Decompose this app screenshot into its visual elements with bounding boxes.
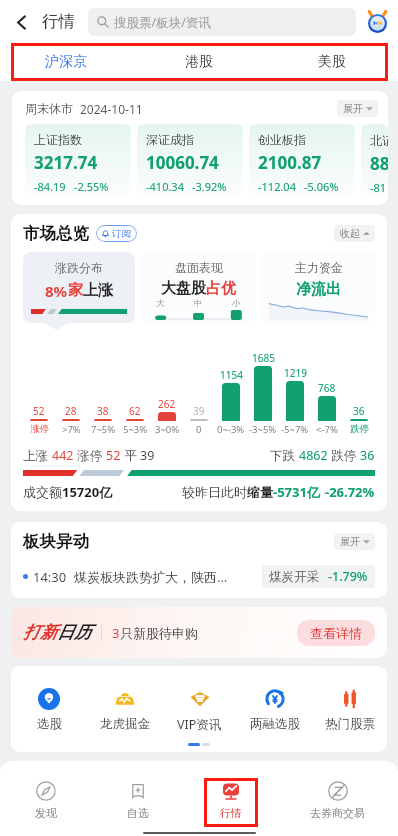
staticText: 0	[196, 423, 202, 436]
staticText: 北证50	[370, 132, 388, 148]
button[interactable]: 收起	[334, 225, 375, 242]
staticText: 3217.74	[34, 151, 98, 174]
staticText: 较昨日此时	[182, 484, 247, 500]
button[interactable]: 行情	[185, 781, 277, 820]
staticText: 煤炭板块跌势扩大，陕西…	[74, 568, 228, 586]
staticText: 热门股票	[325, 716, 375, 732]
button[interactable]: 北证50	[361, 124, 388, 194]
staticText: 62	[129, 404, 141, 418]
staticText: 两融选股	[250, 716, 300, 732]
staticText: 4862	[299, 447, 328, 464]
button[interactable]: 两融选股	[237, 688, 312, 732]
staticText: 展开	[340, 535, 360, 548]
staticText: 平 39	[121, 447, 155, 464]
button[interactable]: 上证指数	[25, 124, 131, 194]
button[interactable]: 选股	[11, 688, 87, 732]
staticText: 去券商交易	[310, 806, 365, 820]
staticText: 搜股票/板块/资讯	[114, 14, 211, 31]
staticText: 28	[65, 404, 77, 418]
staticText: -2.55%	[74, 179, 109, 194]
staticText: 上涨	[83, 281, 113, 300]
button[interactable]: 美股	[265, 43, 398, 81]
staticText: 下跌	[270, 447, 299, 464]
staticText: -1.79%	[328, 568, 368, 585]
button[interactable]: Back	[4, 5, 38, 39]
staticText: 行情	[220, 806, 242, 820]
staticText: VIP资讯	[177, 716, 222, 733]
staticText: <-7%	[316, 423, 338, 436]
staticText: 占优	[206, 279, 236, 298]
button[interactable]: 沪深京	[0, 43, 132, 81]
staticText: 中	[194, 298, 203, 309]
button[interactable]: 展开	[334, 533, 375, 550]
staticText: 52	[106, 447, 121, 464]
staticText: 14:30	[33, 568, 67, 586]
staticText: 沪深京	[45, 53, 87, 71]
button[interactable]: 14:30	[23, 565, 375, 588]
staticText: 887.69	[370, 152, 388, 175]
button[interactable]: 发现	[0, 781, 91, 820]
button[interactable]: 主力资金	[262, 252, 375, 323]
staticText: 深证成指	[146, 132, 194, 147]
staticText: 只新股待申购	[120, 625, 198, 641]
button[interactable]: 去券商交易	[277, 781, 398, 820]
staticText: 打新	[23, 622, 57, 643]
staticText: 查看详情	[310, 625, 362, 641]
staticText: 7~5%	[91, 423, 116, 436]
button[interactable]: 搜股票/板块/资讯	[88, 8, 356, 36]
staticText: 2024-10-11	[80, 101, 143, 117]
staticText: 日历	[57, 622, 91, 643]
staticText: 5~3%	[123, 423, 148, 436]
staticText: 15720亿	[62, 483, 113, 501]
staticText: 768	[318, 381, 336, 395]
button[interactable]: 订阅	[96, 225, 137, 242]
button[interactable]: AI assistant	[356, 0, 398, 43]
staticText: 3	[112, 624, 120, 642]
staticText: 展开	[343, 102, 363, 115]
staticText: -3.92%	[192, 179, 227, 194]
staticText: 36	[360, 447, 375, 464]
staticText: 上涨	[23, 447, 52, 464]
button[interactable]: 查看详情	[297, 620, 375, 646]
staticText: -5.06%	[304, 179, 339, 194]
button[interactable]: 展开	[337, 100, 378, 117]
staticText: -3~5%	[249, 423, 277, 436]
staticText: 龙虎掘金	[100, 716, 150, 732]
button[interactable]: 自选	[91, 781, 185, 820]
staticText: 38	[97, 404, 109, 418]
staticText: 262	[158, 397, 176, 411]
button[interactable]: 创业板指	[249, 124, 355, 194]
staticText: 净流出	[296, 280, 341, 299]
staticText: 发现	[35, 806, 57, 820]
button[interactable]: 龙虎掘金	[87, 688, 162, 732]
staticText: 盘面表现	[175, 260, 223, 275]
staticText: 美股	[318, 53, 346, 71]
staticText: >7%	[62, 423, 81, 436]
staticText: 港股	[185, 53, 213, 71]
staticText: 2100.87	[258, 151, 322, 174]
button[interactable]: 热门股票	[312, 688, 387, 732]
button[interactable]: 深证成指	[137, 124, 243, 194]
staticText: 1685	[252, 351, 275, 365]
button[interactable]: 港股	[132, 43, 265, 81]
staticText: 市场总览	[23, 223, 89, 244]
staticText: 涨跌分布	[55, 260, 103, 275]
staticText: 36	[353, 404, 365, 418]
staticText: 煤炭开采	[269, 569, 319, 585]
staticText: 收起	[340, 227, 360, 240]
button[interactable]: 盘面表现	[142, 252, 255, 323]
staticText: 选股	[37, 716, 62, 732]
button[interactable]: VIP资讯	[162, 688, 237, 733]
staticText: -112.04	[258, 179, 296, 194]
staticText: 39	[193, 404, 205, 418]
staticText: 自选	[127, 806, 149, 820]
staticText: 1219	[284, 366, 307, 380]
staticText: 订阅	[112, 228, 131, 240]
button[interactable]: 打新	[11, 607, 387, 658]
staticText: -26.72%	[325, 483, 375, 501]
staticText: 成交额	[23, 484, 62, 500]
staticText: 52	[33, 404, 45, 418]
staticText: 大	[156, 298, 165, 309]
button[interactable]: 涨跌分布	[23, 252, 135, 323]
staticText: -84.19	[34, 179, 66, 194]
